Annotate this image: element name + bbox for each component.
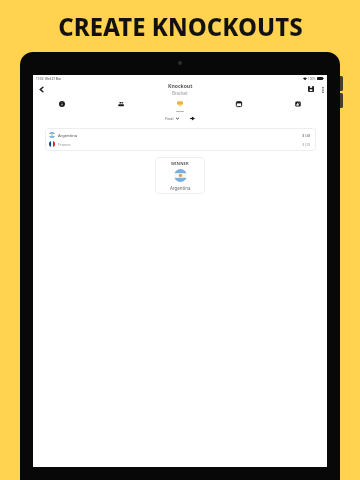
staticText: 3 (2)	[302, 142, 311, 147]
button[interactable]: Final	[163, 115, 181, 122]
staticText: 3 (4)	[302, 133, 311, 138]
staticText: France	[58, 142, 71, 147]
staticText: Knockout	[168, 83, 193, 90]
button[interactable]: More options	[318, 85, 327, 94]
button[interactable]: Stats	[268, 97, 327, 111]
staticText: Argentina	[170, 185, 191, 191]
button[interactable]: Share bracket	[188, 114, 197, 123]
staticText: Bracket	[172, 90, 188, 96]
staticText: CREATE KNOCKOUTS	[58, 10, 303, 43]
staticText: 17:00 Wed 27 Mar	[36, 77, 62, 81]
staticText: Argentina	[58, 133, 77, 138]
button[interactable]: Teams	[91, 97, 150, 111]
staticText: WINNER	[171, 161, 189, 166]
button[interactable]: Info	[33, 97, 91, 111]
button[interactable]: Bracket	[150, 97, 209, 111]
button[interactable]: Argentina	[45, 128, 316, 151]
staticText: 100%	[308, 77, 316, 81]
staticText: Final	[165, 116, 174, 121]
button[interactable]: Save	[305, 83, 317, 95]
button[interactable]: Back	[33, 81, 49, 97]
button[interactable]: Schedule	[209, 97, 268, 111]
button[interactable]: WINNER	[155, 157, 205, 194]
